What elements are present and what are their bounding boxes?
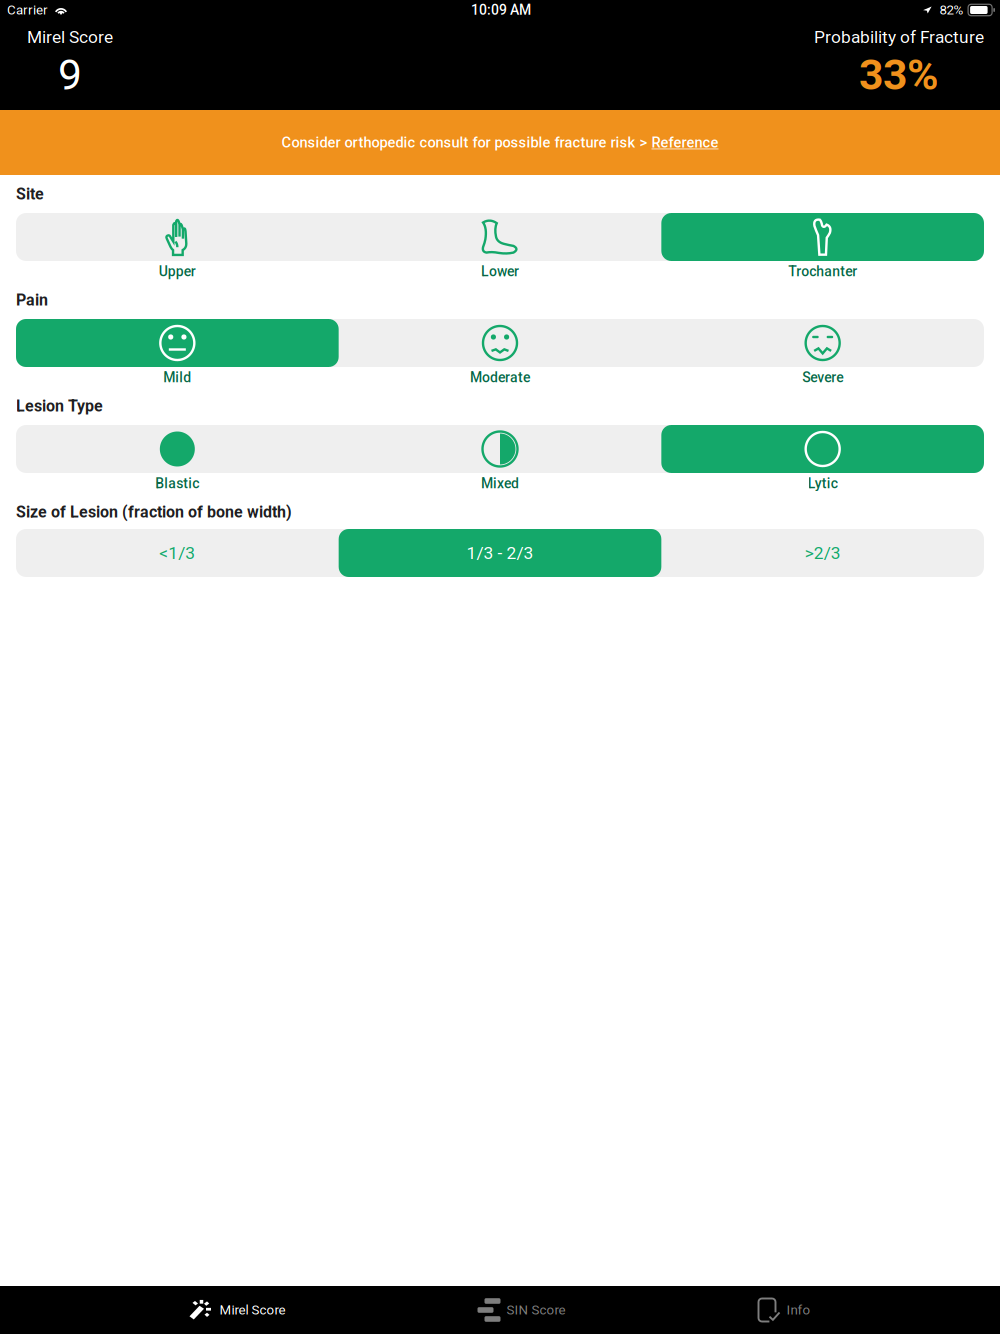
staticText: Pain — [16, 291, 48, 309]
staticText: 9 — [58, 50, 82, 100]
button[interactable]: Mild — [16, 319, 339, 385]
staticText: Consider orthopedic consult for possible… — [281, 134, 651, 151]
staticText: Mixed — [481, 475, 519, 492]
button[interactable]: Lytic — [661, 425, 984, 491]
staticText: Moderate — [470, 369, 530, 386]
staticText: Blastic — [155, 475, 199, 492]
staticText: Upper — [159, 263, 196, 280]
button[interactable]: Severe — [661, 319, 984, 385]
staticText: Mirel Score — [27, 27, 113, 47]
button[interactable]: Lower — [339, 213, 661, 279]
button[interactable]: Mixed — [339, 425, 661, 491]
staticText: 10:09 AM — [471, 2, 531, 18]
staticText: Lytic — [808, 475, 838, 492]
staticText: Probability of Fracture — [814, 27, 984, 47]
staticText: Lower — [481, 263, 519, 280]
staticText: Size of Lesion (fraction of bone width) — [16, 503, 292, 521]
button[interactable]: Mirel Score — [189, 1286, 285, 1334]
staticText: 82% — [940, 2, 964, 18]
button[interactable]: <1/3 — [16, 529, 339, 577]
staticText: Severe — [802, 369, 843, 386]
staticText: Info — [786, 1302, 810, 1318]
staticText: 1/3 - 2/3 — [466, 543, 533, 563]
staticText: Mirel Score — [219, 1302, 285, 1318]
staticText: Carrier — [7, 2, 48, 18]
staticText: Reference — [651, 134, 718, 151]
staticText: Trochanter — [788, 263, 857, 280]
staticText: SIN Score — [506, 1302, 565, 1318]
staticText: Lesion Type — [16, 397, 103, 415]
staticText: 33% — [859, 50, 939, 100]
staticText: <1/3 — [159, 543, 195, 563]
button[interactable]: >2/3 — [661, 529, 984, 577]
button[interactable]: Blastic — [16, 425, 339, 491]
button[interactable]: Moderate — [339, 319, 661, 385]
button[interactable]: Info — [758, 1286, 810, 1334]
staticText: Mild — [163, 369, 191, 386]
button[interactable]: Upper — [16, 213, 339, 279]
button[interactable]: Trochanter — [661, 213, 984, 279]
button[interactable]: Consider orthopedic consult for possible… — [0, 110, 1000, 175]
button[interactable]: SIN Score — [477, 1286, 565, 1334]
staticText: >2/3 — [805, 543, 841, 563]
staticText: Site — [16, 185, 44, 203]
button[interactable]: 1/3 - 2/3 — [339, 529, 661, 577]
